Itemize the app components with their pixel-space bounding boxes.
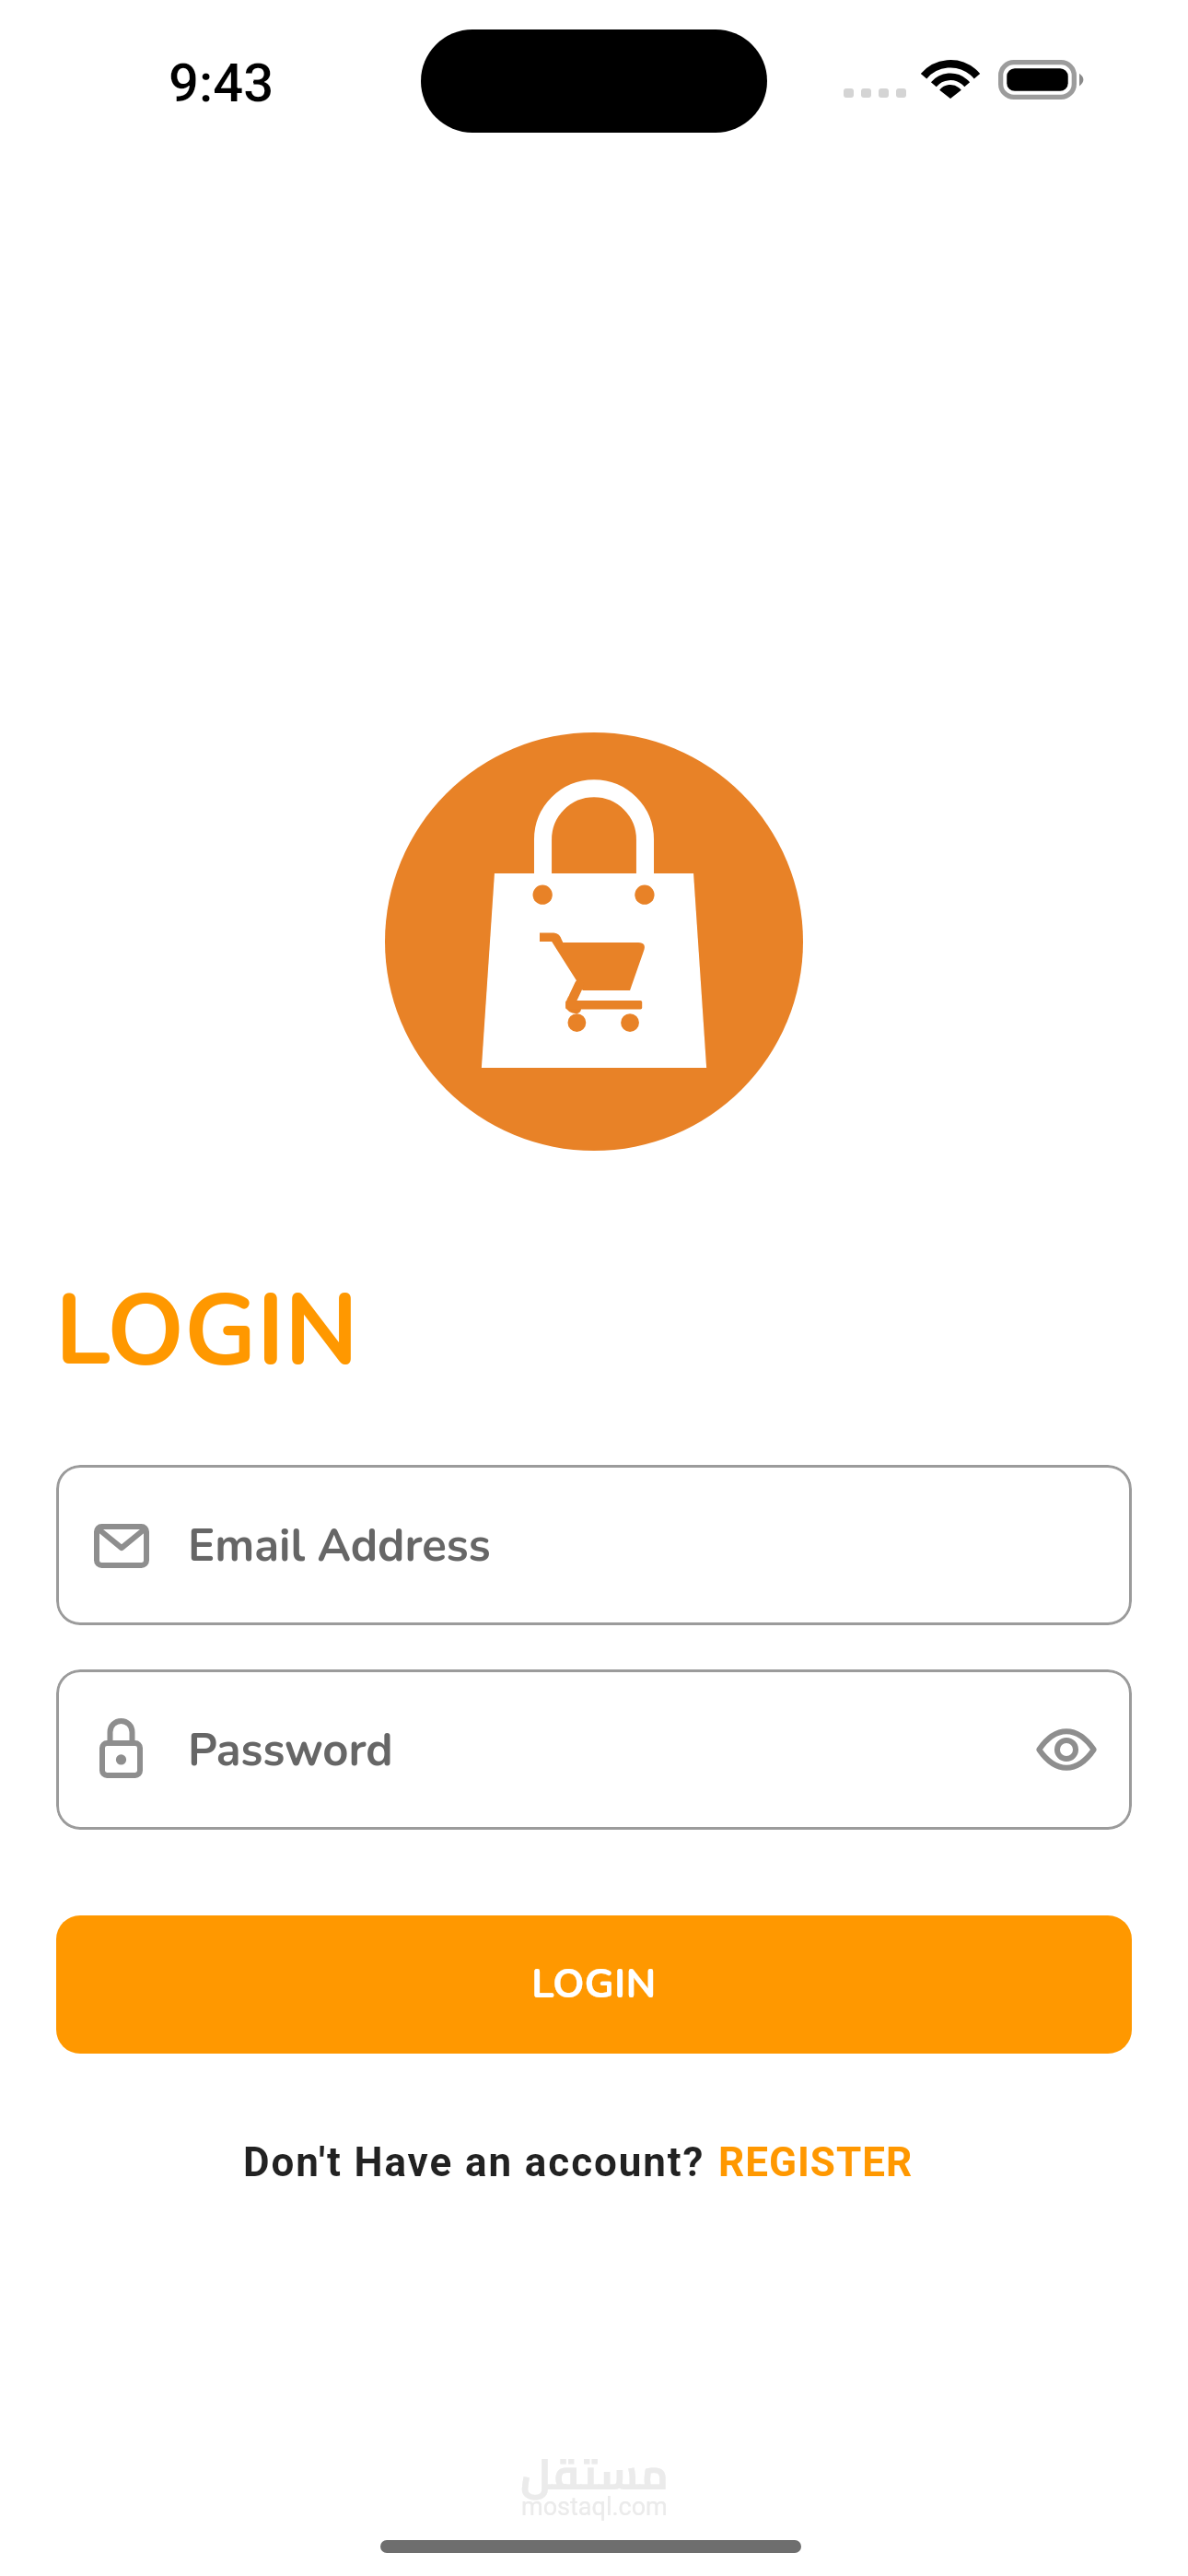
button[interactable]: Email Address [56,1465,1132,1625]
staticText: mostaql.com [521,2492,668,2522]
staticText: LOGIN [531,1957,657,2012]
staticText: Email Address [188,1515,491,1576]
button[interactable]: Password [56,1669,1132,1830]
staticText: 9:43 [169,52,274,114]
staticText: مستقل [520,2433,669,2514]
button[interactable]: LOGIN [56,1915,1132,2054]
staticText: Don't Have an account? [243,2138,705,2186]
staticText: REGISTER [718,2138,914,2186]
staticText: Password [188,1719,393,1781]
staticText: LOGIN [55,1264,359,1399]
button[interactable]: Show password [1011,1694,1122,1805]
button[interactable]: REGISTER [718,2138,914,2186]
